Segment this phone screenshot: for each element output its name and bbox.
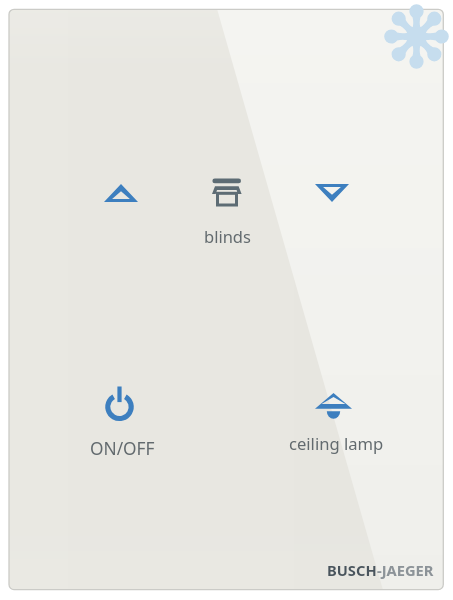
staticText: ceiling lamp	[289, 432, 384, 455]
staticText: -JAEGER	[377, 560, 434, 580]
staticText: ON/OFF	[90, 437, 155, 461]
button[interactable]: Blinds up	[88, 170, 154, 216]
staticText: BUSCH	[327, 560, 377, 580]
button[interactable]: blinds	[186, 178, 268, 247]
button[interactable]: Blinds down	[299, 170, 365, 216]
staticText: blinds	[204, 225, 251, 247]
button[interactable]: ON/OFF	[82, 386, 163, 461]
button[interactable]: ceiling lamp	[280, 393, 392, 455]
